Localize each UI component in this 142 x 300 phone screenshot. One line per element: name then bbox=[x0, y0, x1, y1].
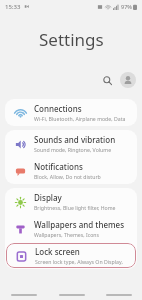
staticText: Notifications bbox=[34, 161, 83, 172]
staticText: Wallpapers and themes bbox=[34, 219, 125, 230]
button[interactable]: Search bbox=[98, 71, 116, 89]
staticText: Screen lock type, Always On Display, Clo… bbox=[35, 258, 130, 265]
staticText: Sounds and vibration bbox=[34, 134, 116, 145]
button[interactable]: Sounds and vibration bbox=[5, 130, 137, 157]
button[interactable]: Display bbox=[5, 188, 137, 215]
button[interactable]: Connections bbox=[5, 99, 137, 126]
staticText: Display bbox=[34, 192, 62, 203]
staticText: Sound mode, Ringtone, Volume bbox=[34, 146, 112, 153]
button[interactable]: Home bbox=[48, 290, 95, 300]
button[interactable]: Account bbox=[120, 72, 136, 88]
button[interactable]: Wallpapers and themes bbox=[5, 215, 137, 242]
staticText: Settings bbox=[39, 28, 104, 51]
staticText: Block, Allow, Do not disturb bbox=[34, 173, 101, 180]
staticText: Brightness, Blue light filter, Home scre… bbox=[34, 204, 131, 211]
button[interactable]: Lock screen bbox=[6, 243, 136, 268]
staticText: Connections bbox=[34, 103, 82, 114]
staticText: Wallpapers, Themes, Icons bbox=[34, 231, 99, 238]
staticText: 15:33 bbox=[5, 3, 21, 11]
staticText: 97% bbox=[121, 3, 132, 10]
button[interactable]: Recents bbox=[0, 290, 48, 300]
button[interactable]: Notifications bbox=[5, 157, 137, 184]
staticText: Lock screen bbox=[35, 246, 80, 257]
button[interactable]: Back bbox=[95, 290, 142, 300]
staticText: Wi-Fi, Bluetooth, Airplane mode, Data us… bbox=[34, 115, 131, 122]
